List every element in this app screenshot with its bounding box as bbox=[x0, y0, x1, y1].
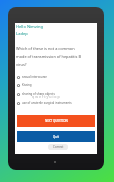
staticText: q w e r t y u i o p bbox=[32, 94, 60, 99]
button[interactable]: Quit bbox=[17, 131, 95, 142]
staticText: Kissing bbox=[22, 83, 32, 87]
button[interactable]: sexual intercourse bbox=[15, 73, 97, 81]
staticText: Which of these is not a common mode of t… bbox=[16, 46, 83, 67]
staticText: Hello Nimzing Ladep bbox=[16, 24, 44, 36]
button[interactable]: use of unsterile surgical instruments bbox=[15, 99, 97, 107]
button[interactable]: Kissing bbox=[15, 81, 97, 89]
staticText: NEXT QUESTION bbox=[45, 119, 68, 123]
staticText: sharing of sharp objects bbox=[22, 92, 55, 96]
button[interactable]: sharing of sharp objects bbox=[15, 90, 97, 98]
staticText: use of unsterile surgical instruments bbox=[22, 101, 72, 105]
staticText: sexual intercourse bbox=[22, 75, 47, 79]
button[interactable]: NEXT QUESTION bbox=[17, 115, 95, 127]
staticText: Correct bbox=[53, 145, 64, 149]
staticText: Quit bbox=[53, 135, 59, 139]
